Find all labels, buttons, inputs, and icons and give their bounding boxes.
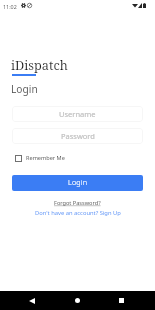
button[interactable]: Remember Me (15, 154, 65, 162)
staticText: Don't have an account? Sign Up (35, 209, 121, 217)
staticText: Remember Me (26, 154, 65, 162)
button[interactable]: Recent apps (111, 291, 131, 310)
button[interactable]: Home (67, 291, 87, 310)
staticText: Password (61, 131, 95, 141)
staticText: Forgot Password? (54, 199, 101, 207)
staticText: iDispatch (11, 56, 68, 73)
staticText: Login (11, 82, 38, 96)
button[interactable]: Password (12, 128, 143, 144)
staticText: Username (59, 109, 96, 119)
button[interactable]: Forgot Password? (48, 197, 107, 209)
button[interactable]: Username (12, 106, 143, 122)
button[interactable]: Login (12, 175, 143, 191)
button[interactable]: Don't have an account? Sign Up (29, 207, 127, 219)
staticText: Login (68, 177, 88, 187)
staticText: 11:02 (3, 3, 17, 10)
button[interactable]: Back (22, 291, 42, 310)
